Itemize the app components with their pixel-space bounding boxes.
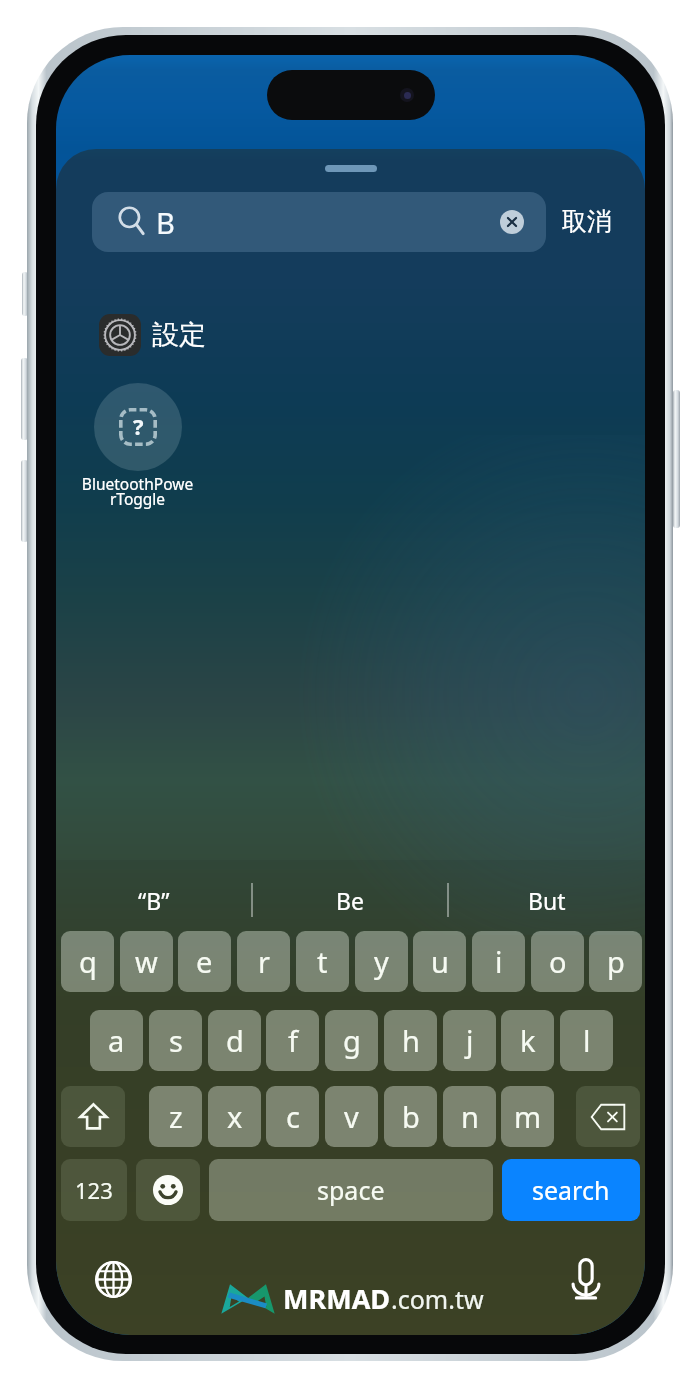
- button[interactable]: 123: [61, 1159, 127, 1221]
- staticText: ?: [133, 411, 144, 441]
- button[interactable]: Clear: [500, 210, 524, 234]
- staticText: z: [169, 1097, 183, 1136]
- staticText: k: [520, 1021, 536, 1060]
- button[interactable]: m: [501, 1086, 554, 1147]
- button[interactable]: b: [384, 1086, 437, 1147]
- staticText: w: [135, 942, 158, 981]
- button[interactable]: f: [266, 1010, 319, 1071]
- button[interactable]: search: [502, 1159, 640, 1221]
- button[interactable]: a: [90, 1010, 143, 1071]
- staticText: h: [402, 1021, 420, 1060]
- button[interactable]: s: [149, 1010, 202, 1071]
- staticText: i: [495, 942, 503, 981]
- staticText: n: [461, 1097, 479, 1136]
- button[interactable]: n: [443, 1086, 496, 1147]
- staticText: o: [549, 942, 567, 981]
- button[interactable]: Be: [252, 873, 448, 927]
- button[interactable]: B: [92, 192, 546, 252]
- button[interactable]: v: [325, 1086, 378, 1147]
- staticText: Be: [336, 885, 364, 916]
- staticText: 取消: [562, 206, 612, 237]
- button[interactable]: w: [120, 931, 173, 992]
- button[interactable]: space: [209, 1159, 493, 1221]
- button[interactable]: g: [325, 1010, 378, 1071]
- button[interactable]: r: [237, 931, 290, 992]
- staticText: y: [374, 942, 389, 981]
- button[interactable]: Dictate: [563, 1256, 609, 1302]
- staticText: But: [528, 885, 566, 916]
- button[interactable]: ?: [72, 383, 203, 509]
- staticText: g: [343, 1021, 361, 1060]
- button[interactable]: c: [266, 1086, 319, 1147]
- staticText: .com.tw: [391, 1282, 484, 1316]
- staticText: s: [169, 1021, 183, 1060]
- staticText: search: [532, 1173, 610, 1207]
- button[interactable]: j: [443, 1010, 496, 1071]
- button[interactable]: e: [178, 931, 231, 992]
- staticText: u: [431, 942, 449, 981]
- button[interactable]: “B”: [56, 873, 252, 927]
- staticText: q: [79, 942, 97, 981]
- staticText: b: [402, 1097, 420, 1136]
- button[interactable]: z: [149, 1086, 202, 1147]
- staticText: MRMAD: [283, 1280, 391, 1317]
- staticText: B: [156, 203, 175, 242]
- staticText: x: [227, 1097, 243, 1136]
- staticText: v: [344, 1097, 359, 1136]
- staticText: a: [108, 1021, 125, 1060]
- staticText: r: [258, 942, 270, 981]
- button[interactable]: 取消: [556, 195, 618, 247]
- button[interactable]: o: [531, 931, 584, 992]
- staticText: c: [286, 1097, 300, 1136]
- button[interactable]: d: [208, 1010, 261, 1071]
- button[interactable]: l: [560, 1010, 613, 1071]
- button[interactable]: But: [448, 873, 645, 927]
- button[interactable]: t: [296, 931, 349, 992]
- button[interactable]: Backspace: [576, 1086, 640, 1147]
- staticText: space: [317, 1173, 385, 1207]
- staticText: l: [583, 1021, 591, 1060]
- staticText: j: [466, 1021, 474, 1060]
- button[interactable]: Emoji: [136, 1159, 200, 1221]
- staticText: 123: [75, 1175, 113, 1205]
- staticText: BluetoothPowe rToggle: [72, 473, 203, 509]
- staticText: e: [196, 942, 213, 981]
- button[interactable]: k: [501, 1010, 554, 1071]
- button[interactable]: q: [61, 931, 114, 992]
- staticText: m: [514, 1097, 542, 1136]
- staticText: f: [288, 1021, 298, 1060]
- button[interactable]: u: [413, 931, 466, 992]
- button[interactable]: i: [472, 931, 525, 992]
- staticText: “B”: [138, 885, 170, 916]
- staticText: t: [317, 942, 328, 981]
- staticText: d: [226, 1021, 244, 1060]
- button[interactable]: p: [589, 931, 642, 992]
- button[interactable]: Shift: [61, 1086, 125, 1147]
- button[interactable]: y: [355, 931, 408, 992]
- staticText: 設定: [152, 318, 206, 352]
- button[interactable]: 設定: [99, 307, 379, 363]
- button[interactable]: Change keyboard: [90, 1256, 136, 1302]
- staticText: p: [607, 942, 625, 981]
- button[interactable]: h: [384, 1010, 437, 1071]
- button[interactable]: x: [208, 1086, 261, 1147]
